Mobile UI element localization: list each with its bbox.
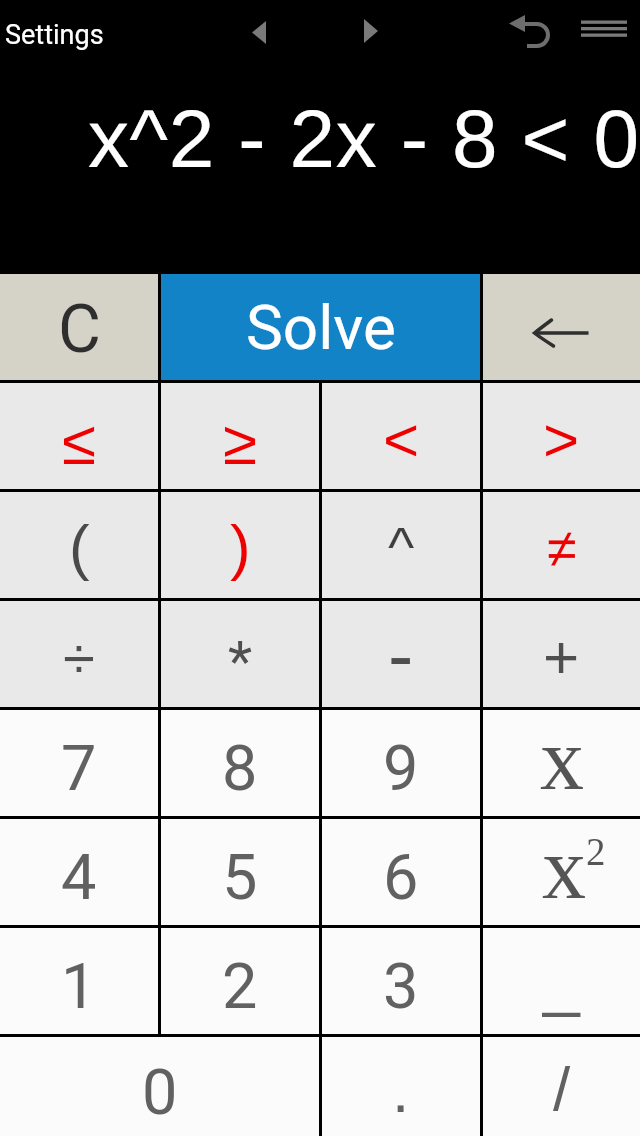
button[interactable]: 7 xyxy=(0,710,158,816)
button[interactable]: 6 xyxy=(322,819,480,925)
button[interactable]: 3 xyxy=(322,928,480,1034)
staticText: 4 xyxy=(61,841,97,915)
staticText: ^ xyxy=(388,515,415,578)
staticText: 6 xyxy=(383,841,419,915)
button[interactable]: > xyxy=(483,383,640,489)
button[interactable] xyxy=(505,8,560,58)
staticText: ) xyxy=(230,512,251,581)
button[interactable]: Solve xyxy=(161,274,480,380)
button[interactable] xyxy=(572,8,634,58)
staticText: 5 xyxy=(222,841,258,915)
button[interactable]: ) xyxy=(161,492,319,598)
staticText: 8 xyxy=(222,732,258,806)
button[interactable]: - xyxy=(322,601,480,707)
staticText: 0 xyxy=(142,1056,178,1130)
staticText: ( xyxy=(69,512,90,581)
button[interactable]: ≤ xyxy=(0,383,158,489)
staticText: * xyxy=(228,629,253,695)
button[interactable]: ≥ xyxy=(161,383,319,489)
staticText: 3 xyxy=(383,950,419,1024)
staticText: ÷ xyxy=(63,625,95,690)
button[interactable]: + xyxy=(483,601,640,707)
staticText: 9 xyxy=(383,732,419,806)
staticText: Settings xyxy=(5,19,104,51)
staticText: 1 xyxy=(61,950,97,1024)
staticText: > xyxy=(543,405,580,474)
staticText: / xyxy=(553,1054,571,1123)
staticText: < xyxy=(383,405,420,474)
button[interactable]: . xyxy=(322,1037,480,1136)
button[interactable]: 9 xyxy=(322,710,480,816)
staticText: Solve xyxy=(246,291,396,364)
button[interactable]: 0 xyxy=(0,1037,319,1136)
button[interactable]: ^ xyxy=(322,492,480,598)
staticText: ≠ xyxy=(547,518,577,578)
button[interactable]: 5 xyxy=(161,819,319,925)
button[interactable]: < xyxy=(322,383,480,489)
button[interactable]: 2 xyxy=(161,928,319,1034)
staticText: 2 xyxy=(222,950,258,1024)
staticText: 2 xyxy=(586,830,606,873)
staticText: . xyxy=(392,1056,410,1125)
button[interactable]: x xyxy=(483,710,640,816)
button[interactable]: 1 xyxy=(0,928,158,1034)
staticText: ≥ xyxy=(223,408,258,477)
button[interactable]: _ xyxy=(483,928,640,1034)
staticText: C xyxy=(58,291,101,368)
staticText: x xyxy=(542,820,586,917)
staticText: 7 xyxy=(61,732,97,806)
button[interactable] xyxy=(483,274,640,380)
staticText: _ xyxy=(543,944,580,1018)
button[interactable]: ÷ xyxy=(0,601,158,707)
button[interactable]: ≠ xyxy=(483,492,640,598)
staticText: ≤ xyxy=(62,408,97,477)
button[interactable]: ( xyxy=(0,492,158,598)
button[interactable] xyxy=(240,10,280,60)
button[interactable]: 8 xyxy=(161,710,319,816)
button[interactable] xyxy=(0,10,120,60)
button[interactable]: / xyxy=(483,1037,640,1136)
button[interactable]: C xyxy=(0,274,158,380)
staticText: + xyxy=(543,622,580,691)
staticText: x xyxy=(540,711,584,808)
staticText: x^2 - 2x - 8 < 0 xyxy=(88,93,640,185)
button[interactable]: 4 xyxy=(0,819,158,925)
button[interactable]: x xyxy=(483,819,640,925)
button[interactable] xyxy=(352,10,392,60)
button[interactable]: * xyxy=(161,601,319,707)
staticText: - xyxy=(388,612,414,697)
